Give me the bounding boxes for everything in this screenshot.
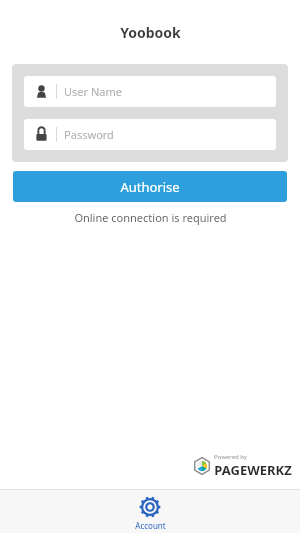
other: User [34, 84, 49, 99]
other: Password [34, 127, 49, 142]
button[interactable]: Password [24, 119, 276, 150]
button[interactable]: User [24, 76, 276, 107]
other: Account [139, 496, 161, 518]
staticText: Powered by [214, 453, 247, 461]
staticText: PAGEWERKZ [214, 461, 292, 479]
staticText: Account [135, 520, 166, 531]
button[interactable]: Authorise [13, 171, 287, 202]
staticText: Password [64, 127, 114, 142]
staticText: Authorise [120, 178, 180, 196]
staticText: Yoobook [120, 23, 181, 42]
staticText: Online connection is required [74, 210, 227, 225]
button[interactable]: Account [0, 492, 300, 531]
staticText: User Name [64, 84, 122, 99]
